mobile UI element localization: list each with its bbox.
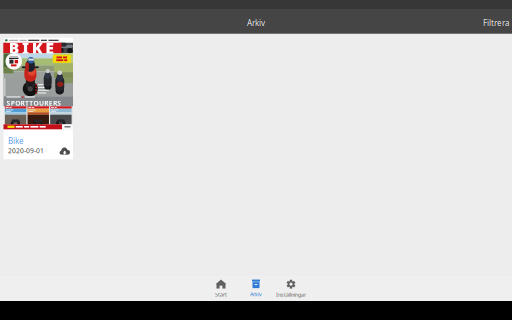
staticText: Filtrera xyxy=(483,18,509,28)
staticText: E xyxy=(45,37,54,58)
staticText: 2020-09-01 xyxy=(8,146,44,155)
staticText: Bike xyxy=(8,136,24,146)
button[interactable]: Arkiv xyxy=(238,274,273,301)
staticText: SPORTTOURERS xyxy=(6,99,61,107)
staticText: K xyxy=(32,37,43,58)
staticText: B xyxy=(8,37,19,58)
button[interactable]: Inställningar xyxy=(273,274,308,301)
staticText: Inställningar xyxy=(276,291,306,298)
staticText: I xyxy=(22,37,29,58)
button[interactable]: B xyxy=(3,38,73,159)
button[interactable]: Filtrera xyxy=(475,10,512,32)
staticText: Arkiv xyxy=(250,290,262,298)
staticText: Arkiv xyxy=(247,18,265,28)
staticText: Start xyxy=(215,291,227,298)
button[interactable]: Start xyxy=(203,274,238,301)
